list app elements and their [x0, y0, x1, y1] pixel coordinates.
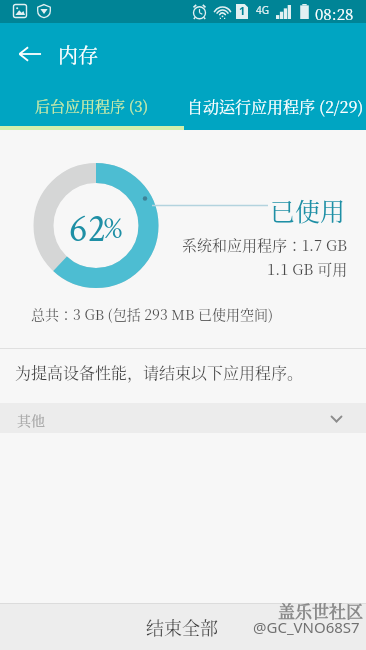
staticText: 盖乐世社区: [278, 598, 363, 622]
staticText: 1.1 GB 可用: [267, 258, 348, 280]
staticText: 已使用: [270, 192, 346, 228]
staticText: 4G: [256, 3, 269, 17]
staticText: 其他: [17, 410, 45, 430]
staticText: 总共：3 GB (包括 293 MB 已使用空间): [31, 304, 274, 324]
button[interactable]: 其他: [0, 403, 366, 433]
staticText: 内存: [58, 40, 98, 69]
staticText: 为提高设备性能，请结束以下应用程序。: [15, 361, 304, 384]
staticText: %: [103, 210, 123, 249]
staticText: 后台应用程序 (3): [35, 95, 149, 117]
staticText: 1: [239, 3, 246, 18]
staticText: 08:28: [315, 3, 354, 25]
button[interactable]: 自动运行应用程序 (2/29): [183, 85, 366, 127]
button[interactable]: Back: [10, 34, 50, 74]
button[interactable]: 后台应用程序 (3): [0, 85, 183, 127]
button[interactable]: 结束全部: [0, 603, 366, 650]
staticText: @GC_VNO68S7: [253, 617, 360, 637]
staticText: 结束全部: [146, 614, 218, 640]
staticText: 自动运行应用程序 (2/29): [187, 95, 366, 118]
staticText: 62: [69, 204, 106, 255]
staticText: 系统和应用程序：1.7 GB: [182, 234, 348, 256]
